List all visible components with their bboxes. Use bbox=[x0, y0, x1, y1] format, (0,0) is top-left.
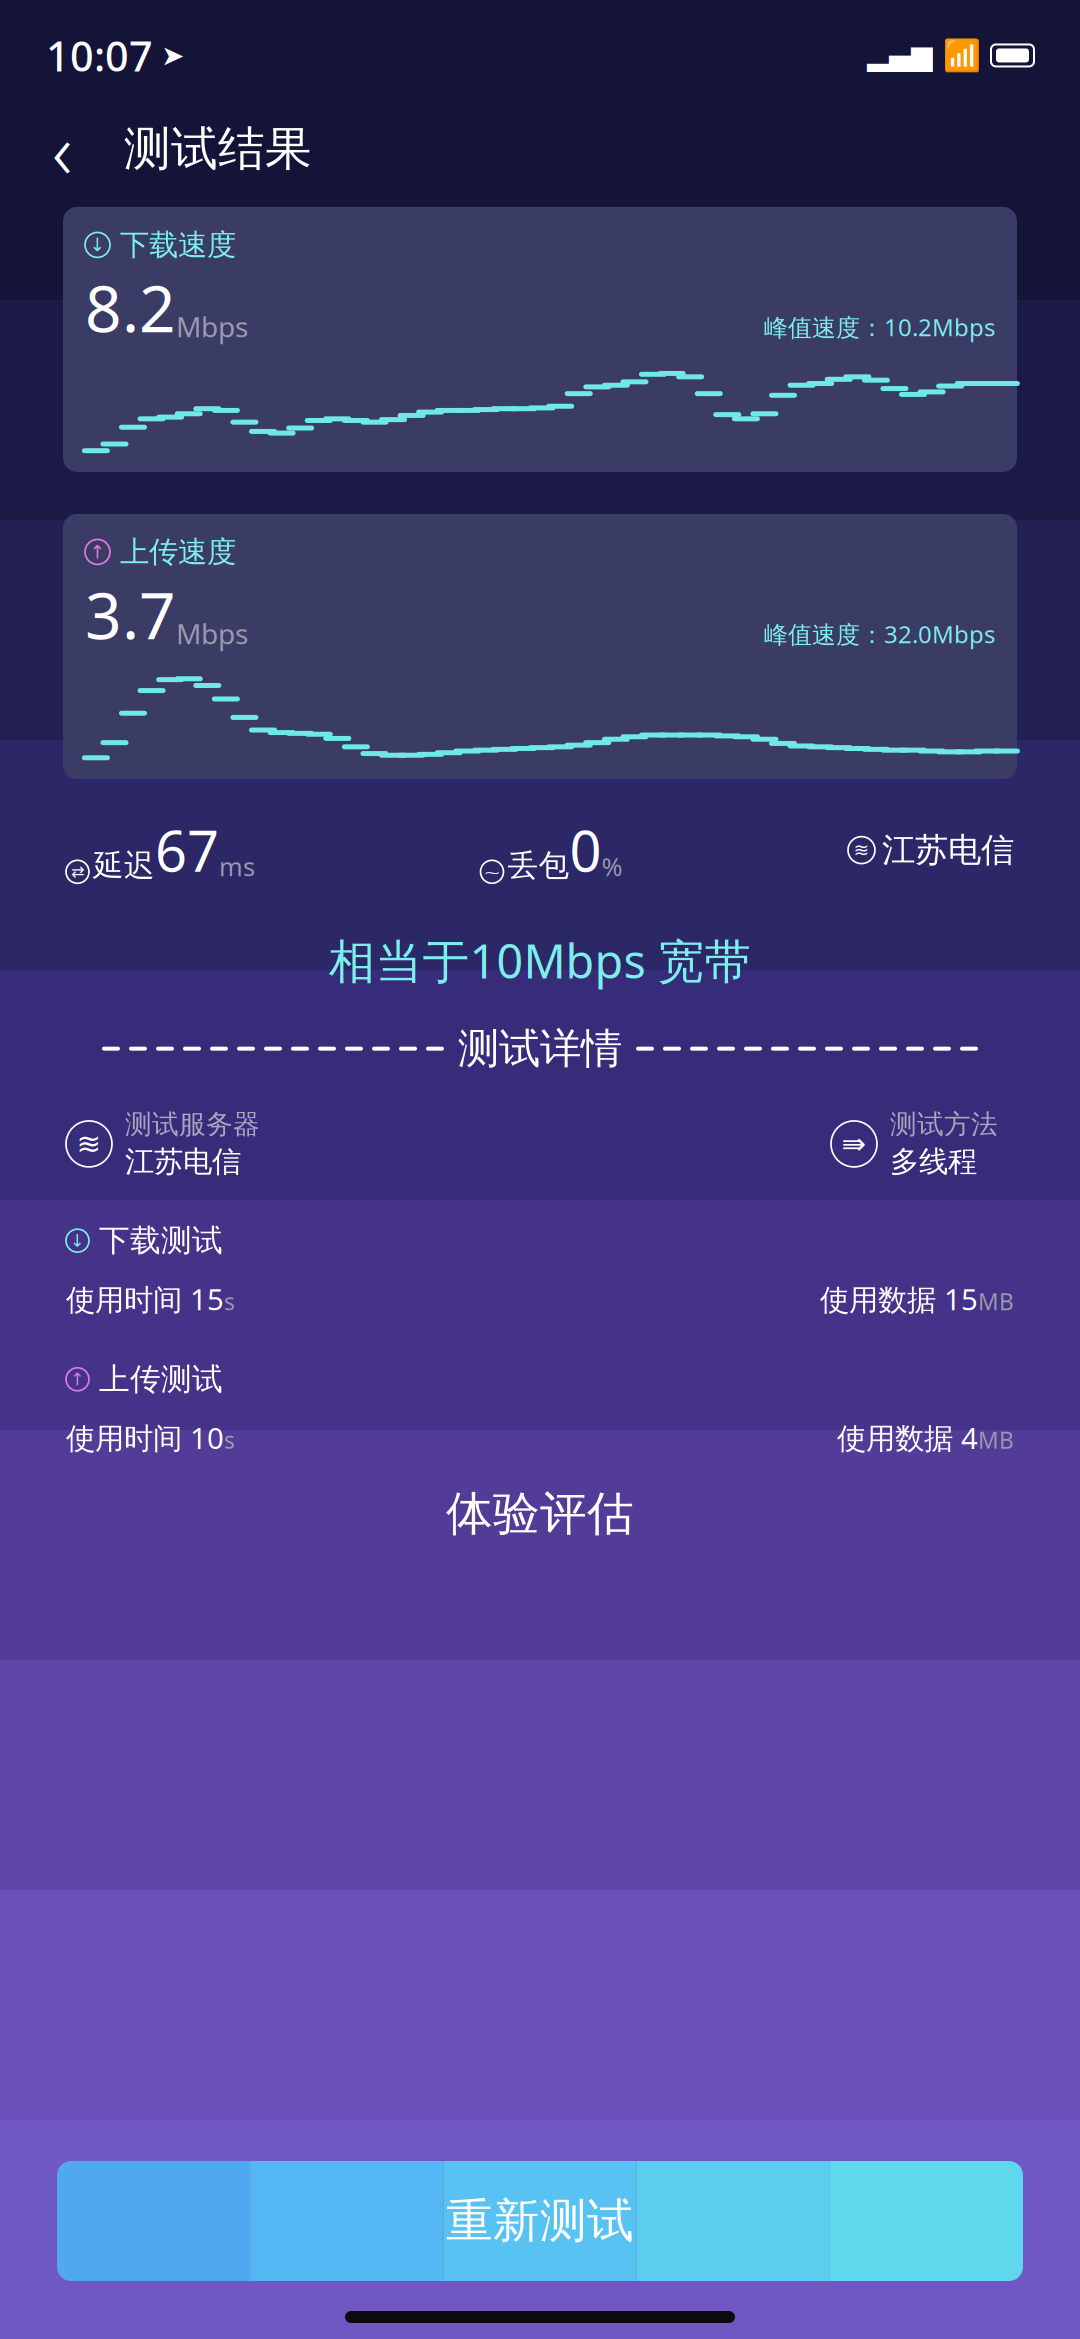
staticText: 多线程 bbox=[890, 1144, 977, 1180]
staticText: s bbox=[224, 1425, 235, 1455]
staticText: 江苏电信 bbox=[125, 1144, 241, 1180]
staticText: 上传测试 bbox=[99, 1360, 223, 1398]
staticText: 测试服务器 bbox=[125, 1108, 260, 1141]
staticText: Mbps bbox=[176, 308, 248, 345]
staticText: 测试结果 bbox=[124, 120, 312, 177]
staticText: 体验评估 bbox=[446, 1485, 634, 1542]
staticText: MB bbox=[978, 1425, 1014, 1455]
staticText: ms bbox=[219, 850, 255, 883]
staticText: 重新测试 bbox=[446, 2192, 634, 2250]
staticText: 📶 bbox=[943, 38, 981, 73]
staticText: 8.2 bbox=[85, 265, 176, 350]
staticText: 使用数据 15 bbox=[820, 1279, 978, 1318]
staticText: 下载速度 bbox=[120, 227, 236, 263]
staticText: ‹ bbox=[52, 97, 72, 200]
staticText: Mbps bbox=[176, 615, 248, 652]
staticText: 丢包 bbox=[507, 847, 569, 884]
staticText: % bbox=[601, 850, 622, 883]
staticText: ⇄ bbox=[71, 863, 84, 881]
staticText: 测试详情 bbox=[458, 1023, 622, 1074]
staticText: ≋ bbox=[853, 839, 869, 861]
staticText: MB bbox=[978, 1286, 1014, 1316]
staticText: 67 bbox=[155, 813, 219, 887]
staticText: 使用时间 15 bbox=[66, 1279, 224, 1318]
staticText: 0 bbox=[569, 813, 601, 887]
staticText: 峰值速度：10.2Mbps bbox=[764, 311, 995, 343]
staticText: 上传速度 bbox=[120, 534, 236, 570]
button[interactable]: 返回 bbox=[24, 111, 100, 187]
staticText: ↑ bbox=[89, 541, 105, 562]
staticText: 下载测试 bbox=[99, 1222, 223, 1259]
staticText: 相当于10Mbps 宽带 bbox=[328, 929, 751, 991]
staticText: 江苏电信 bbox=[882, 830, 1014, 870]
staticText: 延迟 bbox=[93, 847, 155, 884]
staticText: ➤ bbox=[161, 40, 184, 71]
staticText: s bbox=[224, 1286, 235, 1316]
staticText: 测试方法 bbox=[890, 1108, 998, 1141]
staticText: ↓ bbox=[89, 234, 105, 255]
staticText: 3.7 bbox=[85, 572, 176, 657]
staticText: ↑ bbox=[70, 1369, 85, 1389]
staticText: 使用时间 10 bbox=[66, 1418, 224, 1457]
staticText: ⇛ bbox=[841, 1127, 866, 1161]
staticText: 10:07 bbox=[46, 28, 153, 83]
staticText: ≋ bbox=[76, 1127, 101, 1161]
staticText: 峰值速度：32.0Mbps bbox=[764, 618, 995, 650]
staticText: ⁓ bbox=[484, 861, 500, 882]
button[interactable]: 重新测试 bbox=[57, 2161, 1023, 2281]
staticText: ↓ bbox=[70, 1231, 85, 1250]
staticText: 使用数据 4 bbox=[837, 1418, 978, 1457]
staticText: ▂▄▆ bbox=[867, 40, 933, 71]
